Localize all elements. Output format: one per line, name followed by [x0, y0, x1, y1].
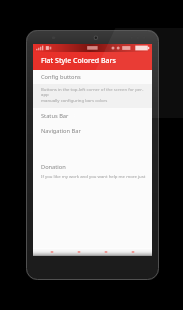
staticText: Flat Style Colored Bars [41, 56, 116, 66]
button[interactable]: Back [44, 248, 60, 256]
button[interactable]: Config buttons [33, 70, 152, 84]
button[interactable]: Home [71, 248, 87, 256]
staticText: Config buttons [41, 73, 81, 81]
staticText: Navigation Bar [41, 127, 81, 135]
button[interactable]: Donation [33, 160, 152, 173]
button[interactable]: Status Bar [33, 108, 152, 123]
button[interactable]: Navigation Bar [33, 123, 152, 138]
button[interactable]: Menu [125, 248, 141, 256]
button[interactable]: Recents [98, 248, 114, 256]
button[interactable]: If you like my work and you want help me… [33, 173, 152, 183]
button[interactable]: Flat Style Colored Bars [33, 52, 152, 70]
staticText: Buttons in the top-left corner of the sc… [41, 86, 146, 104]
staticText: Donation [41, 163, 66, 171]
staticText: If you like my work and you want help me… [41, 173, 147, 179]
staticText: Status Bar [41, 112, 69, 120]
button[interactable]: Buttons in the top-left corner of the sc… [33, 84, 152, 108]
